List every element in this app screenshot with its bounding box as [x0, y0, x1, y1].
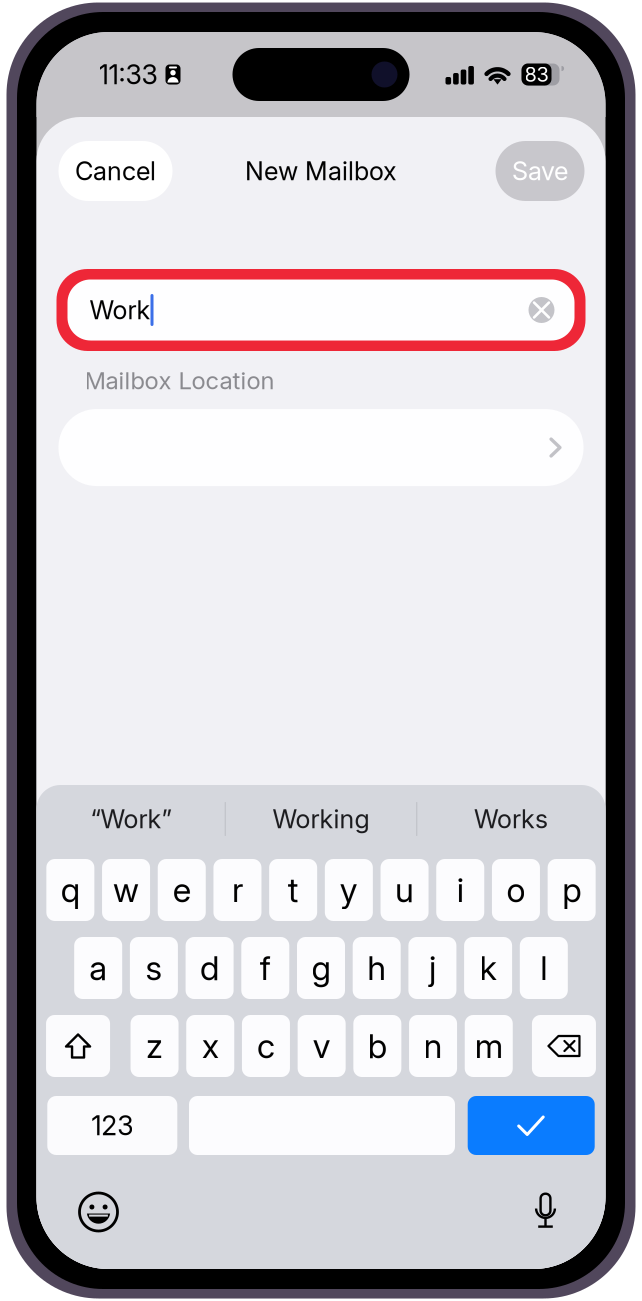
button[interactable]: a [74, 937, 122, 999]
button[interactable]: r [213, 859, 261, 921]
staticText: y [340, 870, 358, 910]
button[interactable]: d [186, 937, 234, 999]
staticText: Working [272, 804, 369, 834]
button[interactable]: y [325, 859, 373, 921]
button[interactable]: s [130, 937, 178, 999]
staticText: f [260, 948, 271, 988]
staticText: l [540, 948, 547, 988]
staticText: Mailbox Location [84, 366, 274, 395]
button[interactable]: g [297, 937, 345, 999]
staticText: o [506, 870, 525, 910]
staticText: s [145, 948, 162, 988]
staticText: t [288, 870, 299, 910]
staticText: Work [89, 295, 150, 325]
staticText: h [367, 948, 386, 988]
button[interactable]: Delete [532, 1015, 596, 1077]
button[interactable]: Dictation [529, 1192, 561, 1232]
button[interactable]: c [242, 1015, 290, 1077]
staticText: w [113, 870, 139, 910]
staticText: 83 [524, 62, 548, 87]
button[interactable]: z [131, 1015, 179, 1077]
button[interactable]: Done [468, 1096, 595, 1155]
staticText: g [311, 948, 330, 988]
button[interactable]: Cancel [58, 141, 172, 201]
button[interactable]: f [241, 937, 289, 999]
staticText: 123 [91, 1109, 133, 1142]
button[interactable]: t [269, 859, 317, 921]
button[interactable]: p [548, 859, 596, 921]
button[interactable]: Shift [46, 1015, 110, 1077]
button[interactable]: x [186, 1015, 234, 1077]
button[interactable]: “Work” [38, 802, 225, 836]
staticText: a [89, 948, 107, 988]
staticText: x [202, 1026, 219, 1066]
staticText: k [480, 948, 497, 988]
staticText: j [429, 948, 436, 988]
staticText: i [457, 870, 464, 910]
staticText: Works [474, 804, 548, 834]
button[interactable]: w [102, 859, 150, 921]
button[interactable]: b [353, 1015, 401, 1077]
button[interactable]: j [408, 937, 456, 999]
staticText: e [173, 870, 191, 910]
button[interactable] [58, 409, 583, 486]
button[interactable]: Working [226, 802, 416, 836]
staticText: v [313, 1026, 331, 1066]
button[interactable]: u [381, 859, 429, 921]
button[interactable]: Works [417, 802, 604, 836]
staticText: New Mailbox [245, 156, 397, 186]
button[interactable]: n [409, 1015, 457, 1077]
staticText: 11:33 [98, 58, 157, 91]
button[interactable]: Emoji [76, 1192, 120, 1232]
staticText: d [200, 948, 219, 988]
button[interactable]: q [46, 859, 94, 921]
staticText: z [146, 1026, 163, 1066]
staticText: p [562, 870, 581, 910]
staticText: Cancel [75, 156, 156, 186]
button[interactable]: i [436, 859, 484, 921]
staticText: “Work” [91, 804, 172, 834]
staticText: q [61, 870, 80, 910]
staticText: n [424, 1026, 443, 1066]
button[interactable]: l [520, 937, 568, 999]
button[interactable]: 123 [47, 1096, 177, 1155]
button[interactable]: v [298, 1015, 346, 1077]
staticText: u [395, 870, 414, 910]
button[interactable]: h [353, 937, 401, 999]
button[interactable]: m [465, 1015, 513, 1077]
button[interactable]: e [158, 859, 206, 921]
staticText: Save [512, 156, 568, 186]
staticText: c [257, 1026, 275, 1066]
staticText: m [475, 1026, 503, 1066]
staticText: b [368, 1026, 387, 1066]
button[interactable]: k [464, 937, 512, 999]
staticText: r [232, 870, 243, 910]
button[interactable]: o [492, 859, 540, 921]
button[interactable]: Save [495, 141, 584, 201]
